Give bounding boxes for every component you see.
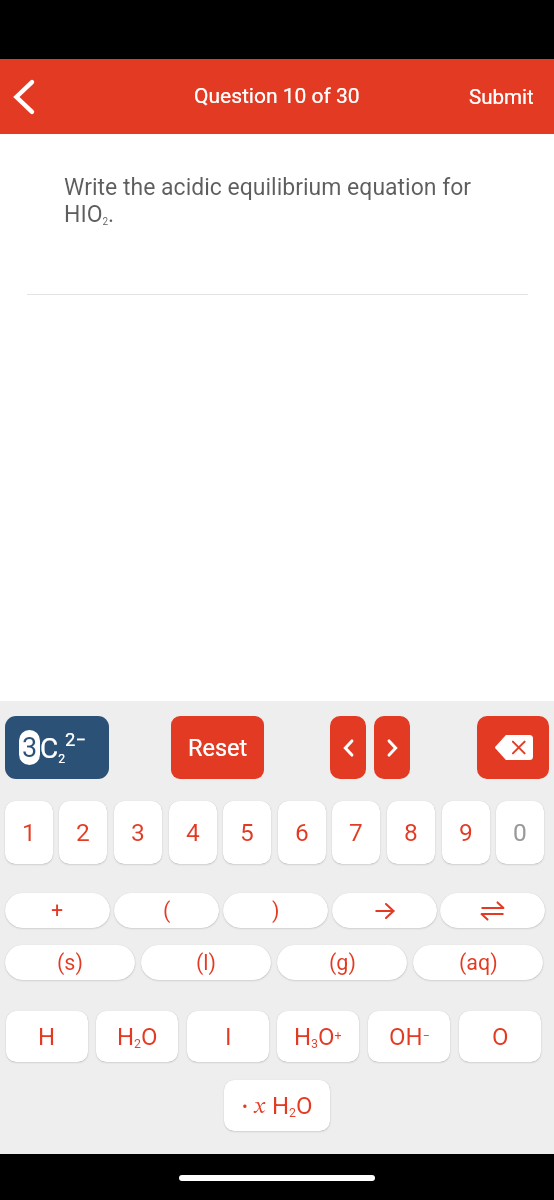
button[interactable]: (l) (141, 945, 271, 980)
staticText: Submit (469, 85, 534, 109)
staticText: O (492, 1023, 509, 1051)
staticText: 7 (349, 818, 363, 847)
button[interactable]: O (459, 1011, 541, 1062)
staticText: 4 (186, 818, 200, 847)
staticText: H (38, 1023, 56, 1051)
button[interactable]: Backspace (477, 716, 549, 779)
staticText: Write the acidic equilibrium equation fo… (64, 174, 476, 228)
button[interactable]: 9 (442, 801, 490, 864)
button[interactable]: Next (374, 716, 410, 779)
staticText: H3O+ (294, 1023, 342, 1051)
staticText: 𝑥 (253, 1095, 266, 1118)
staticText: • (242, 1096, 248, 1116)
button[interactable]: 1 (5, 801, 53, 864)
staticText: 2 (76, 818, 90, 847)
button[interactable]: 8 (387, 801, 435, 864)
button[interactable]: Previous (330, 716, 366, 779)
button[interactable]: Submit (449, 59, 554, 134)
staticText: ) (272, 898, 280, 923)
staticText: H2O (117, 1023, 158, 1051)
button[interactable]: H2O (96, 1011, 178, 1062)
button[interactable]: OH− (368, 1011, 450, 1062)
button[interactable]: I (187, 1011, 269, 1062)
staticText: Reset (188, 734, 248, 762)
staticText: (l) (196, 950, 217, 975)
button[interactable]: Equilibrium arrow (440, 893, 545, 928)
staticText: C22− (40, 729, 87, 766)
button[interactable]: Reset (171, 716, 264, 779)
button[interactable]: Yields arrow (332, 893, 437, 928)
staticText: 8 (404, 818, 418, 847)
staticText: Question 10 of 30 (194, 84, 360, 109)
staticText: ( (163, 898, 171, 923)
staticText: 6 (295, 818, 309, 847)
staticText: (aq) (459, 950, 498, 975)
button[interactable]: 7 (332, 801, 380, 864)
button[interactable]: ) (223, 893, 328, 928)
button[interactable]: • (224, 1080, 330, 1131)
button[interactable]: Answer field (5, 716, 109, 779)
staticText: I (225, 1023, 232, 1051)
staticText: (g) (329, 950, 356, 975)
staticText: 0 (513, 818, 527, 847)
button[interactable]: H3O+ (277, 1011, 359, 1062)
button[interactable]: 2 (59, 801, 107, 864)
staticText: 5 (240, 818, 254, 847)
staticText: H2O (272, 1092, 313, 1120)
button[interactable]: (g) (277, 945, 407, 980)
button[interactable]: ( (114, 893, 219, 928)
button[interactable]: 4 (169, 801, 217, 864)
staticText: (s) (57, 950, 83, 975)
staticText: 3 (22, 732, 38, 764)
button[interactable]: 0 (496, 801, 544, 864)
button[interactable]: (aq) (413, 945, 543, 980)
button[interactable]: 3 (114, 801, 162, 864)
button[interactable]: H (6, 1011, 88, 1062)
staticText: + (51, 898, 64, 923)
button[interactable]: (s) (5, 945, 135, 980)
button[interactable]: Back (0, 59, 48, 134)
button[interactable]: 6 (278, 801, 326, 864)
staticText: OH− (389, 1023, 430, 1051)
staticText: 3 (131, 818, 145, 847)
button[interactable]: + (5, 893, 110, 928)
staticText: 9 (459, 818, 473, 847)
button[interactable]: 5 (223, 801, 271, 864)
staticText: 1 (22, 818, 36, 847)
